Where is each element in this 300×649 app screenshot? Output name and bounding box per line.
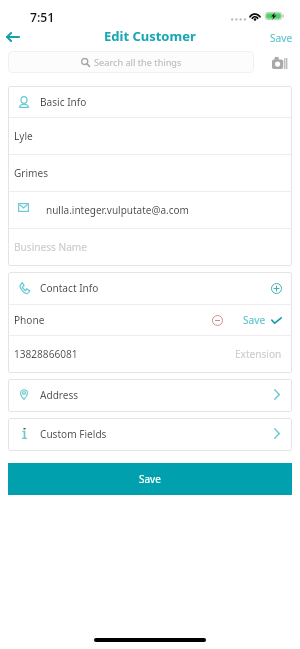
button[interactable]: Add contact — [267, 279, 285, 297]
button[interactable]: Custom Fields — [8, 418, 292, 449]
staticText: Search all the things — [94, 56, 182, 69]
staticText: nulla.integer.vulputate@a.com — [46, 203, 189, 217]
staticText: Save — [139, 472, 161, 486]
staticText: Edit Customer — [104, 27, 196, 45]
button[interactable]: Basic Info — [8, 86, 292, 117]
button[interactable]: Save — [264, 27, 298, 48]
button[interactable]: nulla.integer.vulputate@a.com — [8, 192, 292, 228]
staticText: Basic Info — [40, 95, 87, 109]
button[interactable]: Search all the things — [8, 51, 254, 73]
staticText: Address — [40, 388, 79, 402]
staticText: Contact Info — [40, 281, 99, 295]
button[interactable]: Address — [8, 379, 292, 410]
staticText: Extension — [235, 347, 282, 361]
staticText: Lyle — [14, 129, 33, 143]
staticText: Save — [270, 31, 293, 45]
button[interactable]: Grimes — [8, 155, 292, 191]
staticText: Business Name — [14, 240, 87, 254]
button[interactable]: Business Name — [8, 229, 292, 264]
button[interactable]: Save — [8, 463, 292, 495]
button[interactable]: Save — [243, 313, 266, 327]
button[interactable]: Contact Info — [8, 272, 292, 304]
staticText: Grimes — [14, 166, 49, 180]
button[interactable]: 13828866081 — [8, 336, 292, 372]
button[interactable]: Back — [0, 26, 28, 49]
button[interactable]: Camera — [270, 53, 290, 71]
staticText: 13828866081 — [14, 347, 78, 361]
staticText: Phone — [14, 313, 45, 327]
button[interactable]: Confirm — [270, 314, 283, 327]
staticText: Save — [243, 313, 266, 327]
staticText: Custom Fields — [40, 427, 107, 441]
staticText: 7:51 — [30, 9, 55, 26]
button[interactable]: Remove phone — [209, 312, 225, 328]
button[interactable]: Lyle — [8, 118, 292, 154]
